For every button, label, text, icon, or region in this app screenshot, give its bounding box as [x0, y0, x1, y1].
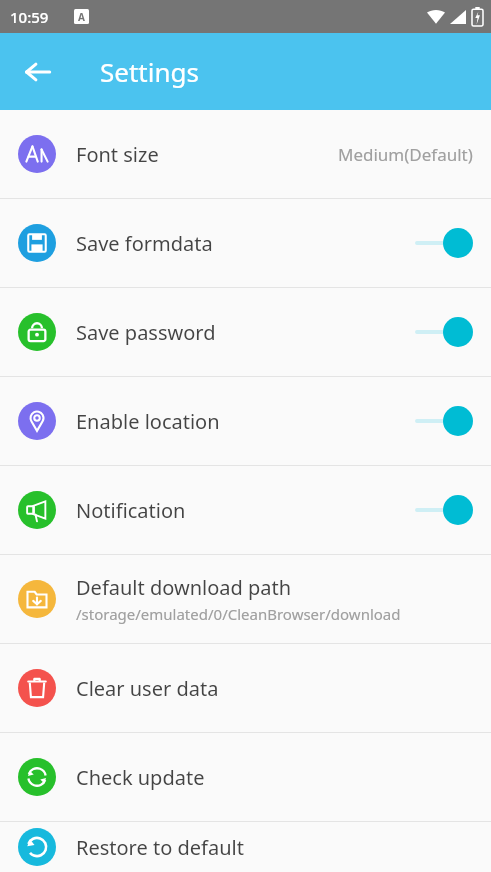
button[interactable]: Toggle	[417, 404, 473, 438]
staticText: 10:59	[10, 7, 49, 27]
button[interactable]: Toggle	[417, 315, 473, 349]
button[interactable]: Font size	[0, 110, 491, 198]
button[interactable]: Save password	[0, 288, 491, 376]
staticText: Font size	[76, 141, 159, 168]
button[interactable]: Toggle	[417, 493, 473, 527]
button[interactable]: Default download path	[0, 555, 491, 643]
button[interactable]: Clear user data	[0, 644, 491, 732]
button[interactable]: Restore to default	[0, 822, 491, 872]
button[interactable]: Enable location	[0, 377, 491, 465]
staticText: Enable location	[76, 408, 220, 435]
staticText: Save password	[76, 319, 216, 346]
button[interactable]: Toggle	[417, 226, 473, 260]
staticText: /storage/emulated/0/CleanBrowser/downloa…	[76, 604, 401, 624]
staticText: Save formdata	[76, 230, 213, 257]
staticText: Notification	[76, 497, 186, 524]
staticText: Check update	[76, 764, 205, 791]
button[interactable]: Notification	[0, 466, 491, 554]
button[interactable]: Back	[14, 48, 62, 96]
staticText: Default download path	[76, 574, 292, 601]
staticText: Restore to default	[76, 834, 244, 861]
staticText: Settings	[100, 54, 199, 89]
staticText: A	[78, 10, 85, 24]
button[interactable]: Check update	[0, 733, 491, 821]
button[interactable]: Save formdata	[0, 199, 491, 287]
staticText: Clear user data	[76, 675, 219, 702]
staticText: Medium(Default)	[338, 143, 473, 166]
